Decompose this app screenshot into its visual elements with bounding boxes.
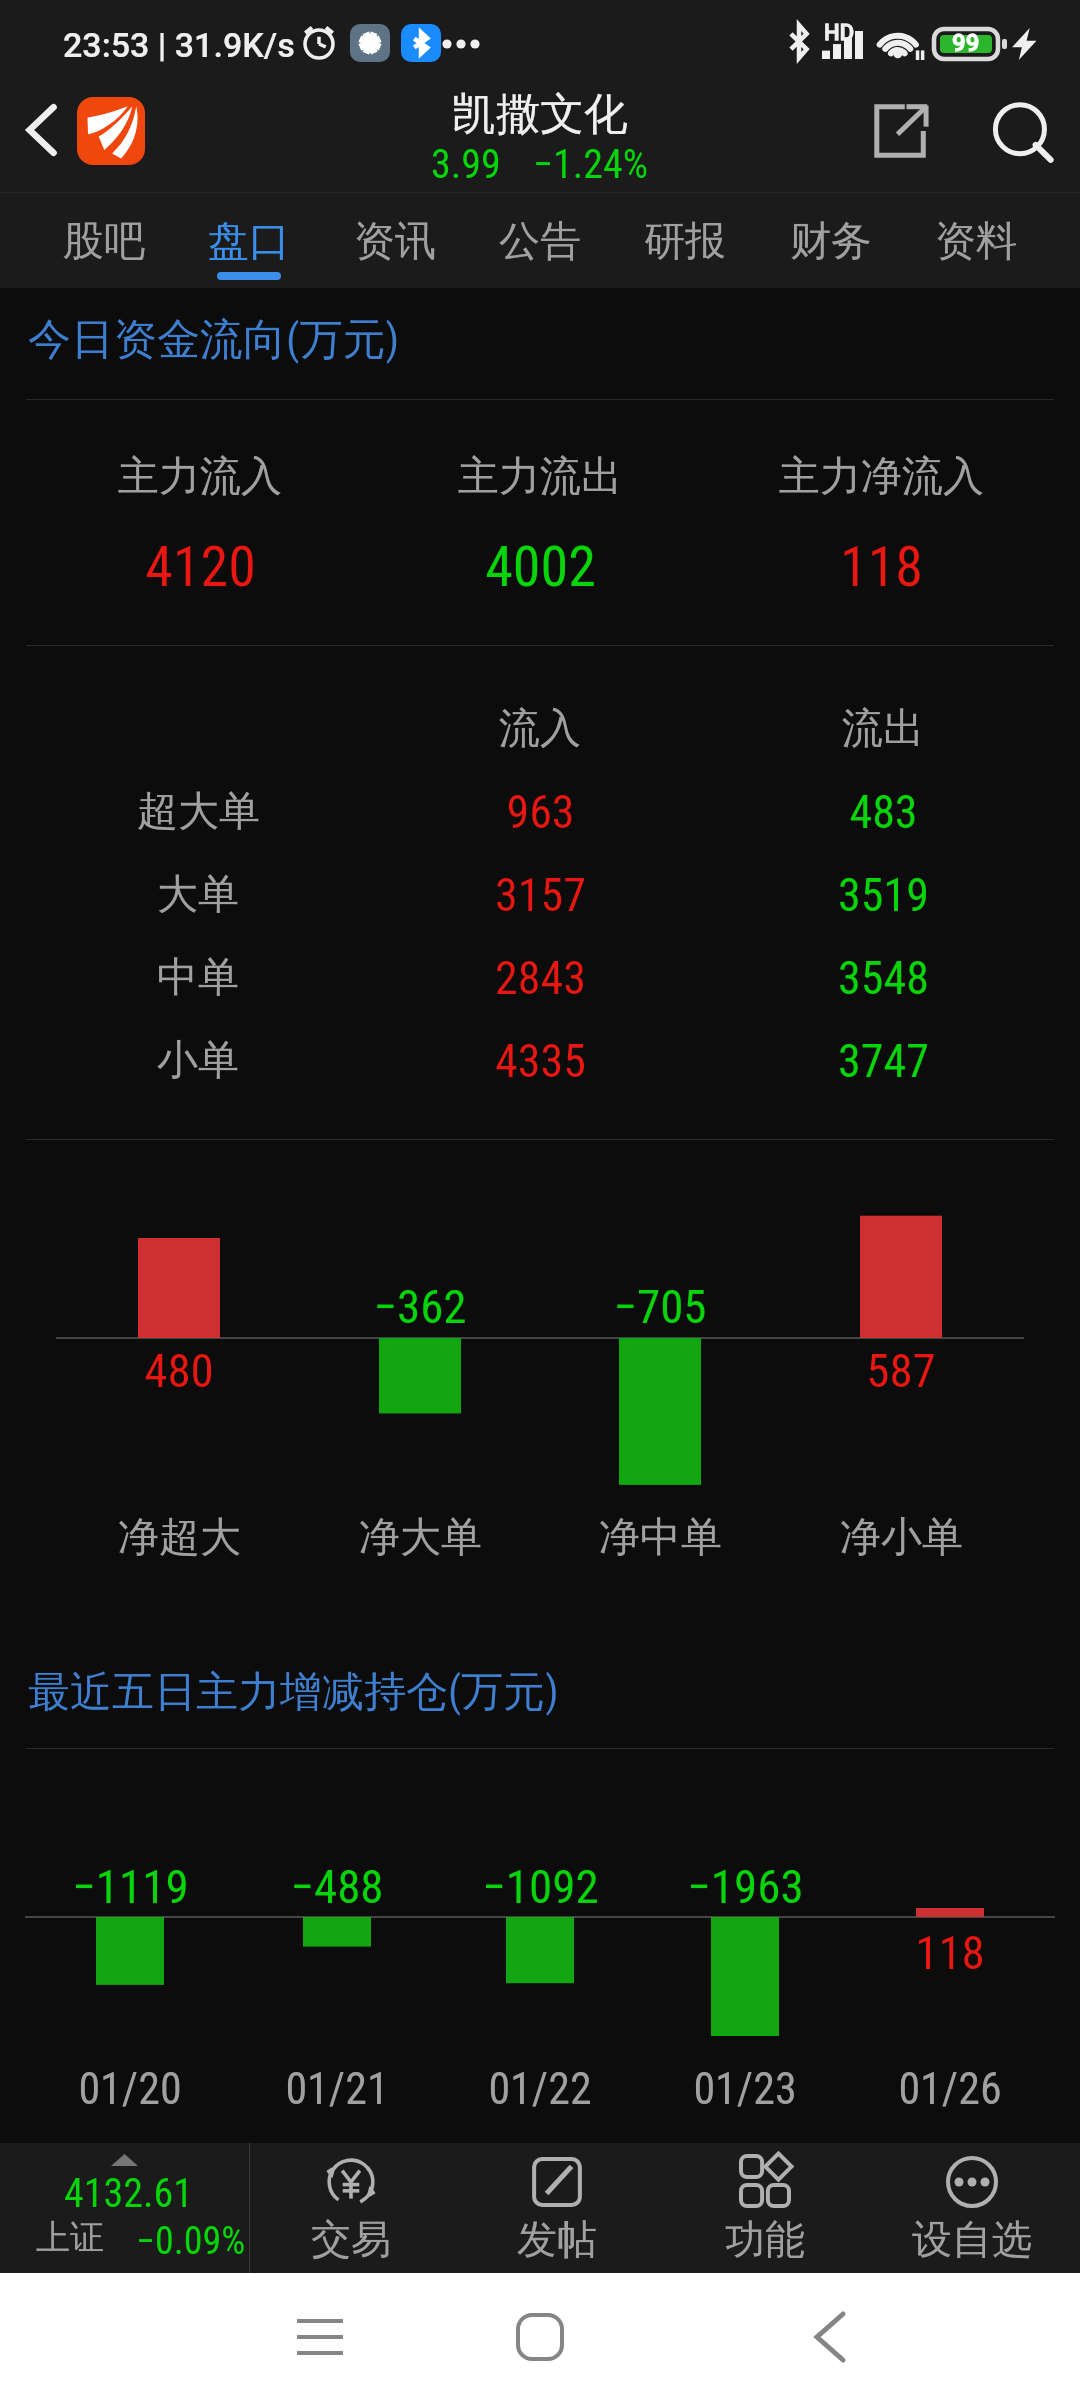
staticText: 资讯	[354, 216, 436, 268]
button[interactable]: 功能	[665, 2143, 865, 2273]
button[interactable]: Recents	[265, 2282, 375, 2392]
button[interactable]: Back	[775, 2282, 885, 2392]
button[interactable]: 设自选	[872, 2143, 1072, 2273]
staticText: 凯撒文化	[452, 87, 628, 142]
button[interactable]: 资料	[904, 192, 1048, 288]
staticText: 净大单	[359, 1512, 482, 1564]
staticText: 净超大	[118, 1512, 241, 1564]
button[interactable]: 财务	[759, 192, 903, 288]
staticText: 盘口	[208, 216, 290, 268]
staticText: HD	[824, 20, 855, 46]
staticText: −362	[373, 1279, 467, 1334]
staticText: 3747	[838, 1034, 929, 1088]
staticText: 4002	[485, 534, 596, 600]
staticText: 今日资金流向(万元)	[28, 313, 400, 367]
staticText: 最近五日主力增减持仓(万元)	[28, 1666, 559, 1719]
button[interactable]: Home	[485, 2282, 595, 2392]
button[interactable]: 研报	[613, 192, 757, 288]
staticText: 01/20	[78, 2063, 182, 2115]
staticText: 超大单	[137, 786, 260, 838]
staticText: 23:53 | 31.9K/s	[63, 25, 295, 65]
staticText: 设自选	[912, 2214, 1032, 2264]
staticText: 99	[952, 29, 980, 57]
staticText: −0.09%	[136, 2219, 246, 2264]
button[interactable]: 公告	[468, 192, 612, 288]
button[interactable]: Search	[972, 83, 1076, 187]
staticText: 上证	[36, 2216, 104, 2259]
staticText: 流出	[842, 703, 924, 755]
button[interactable]: 股吧	[32, 192, 176, 288]
staticText: 股吧	[63, 216, 145, 268]
button[interactable]: Share	[850, 79, 954, 183]
button[interactable]: 盘口	[177, 192, 321, 288]
staticText: 交易	[311, 2214, 391, 2264]
staticText: 主力流出	[458, 451, 622, 503]
staticText: −1.24%	[533, 141, 649, 188]
button[interactable]: 发帖	[457, 2143, 657, 2273]
staticText: 587	[866, 1343, 936, 1398]
staticText: 2843	[495, 951, 586, 1005]
staticText: 功能	[725, 2214, 805, 2264]
staticText: 公告	[499, 216, 581, 268]
staticText: −1963	[687, 1859, 804, 1914]
staticText: 3.99	[431, 141, 501, 188]
staticText: −1092	[482, 1859, 599, 1914]
staticText: 主力净流入	[779, 451, 984, 503]
staticText: 净小单	[840, 1512, 963, 1564]
staticText: 118	[840, 534, 923, 600]
button[interactable]: App home	[77, 97, 145, 165]
staticText: 01/26	[898, 2063, 1002, 2115]
staticText: 4335	[495, 1034, 586, 1088]
staticText: 中单	[157, 952, 239, 1004]
button[interactable]: 交易	[251, 2143, 451, 2273]
staticText: 主力流入	[118, 451, 282, 503]
staticText: 3519	[838, 868, 929, 922]
staticText: 净中单	[599, 1512, 722, 1564]
staticText: 118	[915, 1925, 985, 1980]
staticText: 483	[849, 785, 918, 839]
staticText: 小单	[157, 1035, 239, 1087]
staticText: −1119	[72, 1859, 189, 1914]
staticText: 资料	[935, 216, 1017, 268]
staticText: 3157	[495, 868, 586, 922]
button[interactable]: 资讯	[323, 192, 467, 288]
staticText: 01/23	[693, 2063, 797, 2115]
staticText: −705	[613, 1279, 707, 1334]
staticText: 发帖	[517, 2214, 597, 2264]
staticText: 财务	[790, 216, 872, 268]
staticText: 4132.61	[64, 2170, 194, 2217]
button[interactable]: 4132.61	[0, 2143, 249, 2273]
staticText: 01/22	[488, 2063, 592, 2115]
staticText: 963	[506, 785, 575, 839]
staticText: 4120	[145, 534, 256, 600]
button[interactable]: Back	[0, 88, 82, 192]
staticText: 研报	[644, 216, 726, 268]
staticText: 480	[144, 1343, 214, 1398]
staticText: 大单	[157, 869, 239, 921]
staticText: 3548	[838, 951, 929, 1005]
staticText: 01/21	[285, 2063, 389, 2115]
staticText: 流入	[499, 703, 581, 755]
staticText: −488	[290, 1859, 384, 1914]
